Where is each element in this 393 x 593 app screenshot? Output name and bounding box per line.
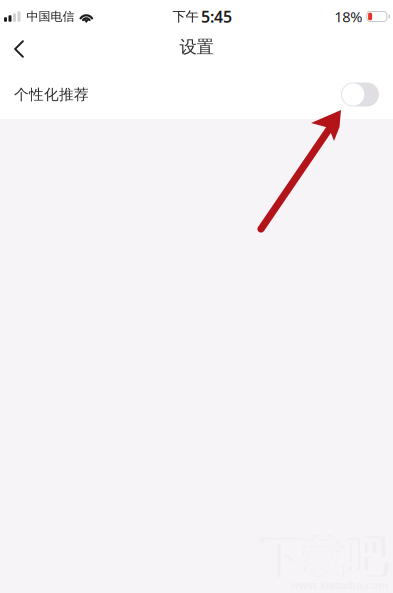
button[interactable]: Back <box>0 30 42 70</box>
staticText: 下午 <box>172 8 198 25</box>
button[interactable]: 个性化推荐 <box>0 70 393 119</box>
staticText: 18% <box>334 7 362 26</box>
staticText: 设置 <box>179 36 213 58</box>
staticText: 中国电信 <box>26 9 74 24</box>
staticText: 5:45 <box>201 6 232 27</box>
staticText: 个性化推荐 <box>14 85 89 103</box>
